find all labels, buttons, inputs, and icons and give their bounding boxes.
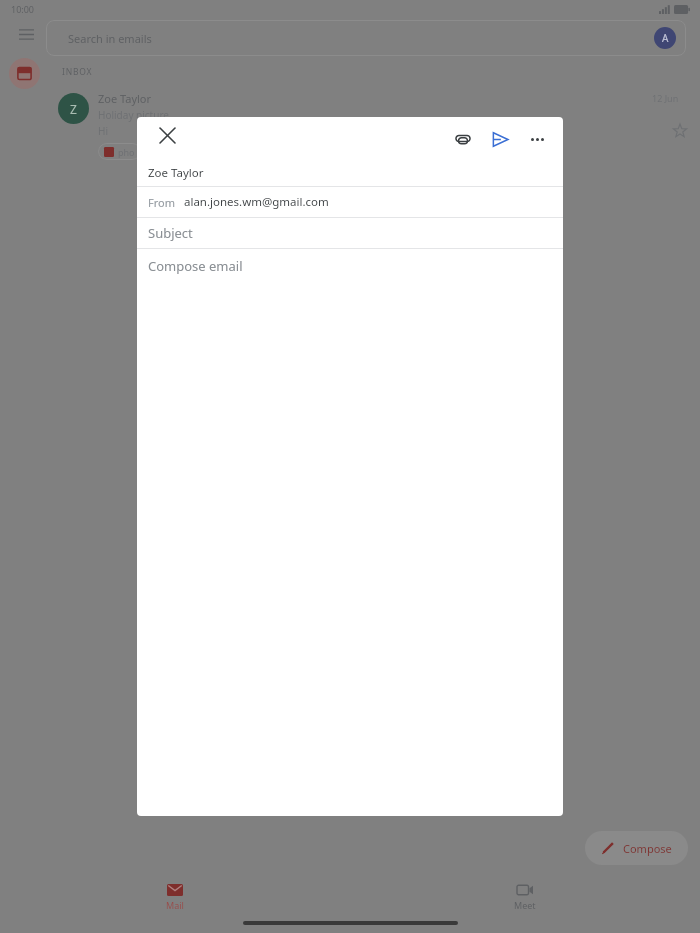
button[interactable]: Meet	[510, 880, 540, 915]
staticText: Meet	[514, 899, 536, 911]
staticText: Zoe Taylor	[148, 165, 204, 181]
button[interactable]: Send	[482, 121, 518, 157]
staticText: A	[662, 31, 669, 45]
staticText: Hi	[98, 124, 108, 138]
button[interactable]: Attach file	[445, 121, 481, 157]
button[interactable]: More options	[519, 121, 555, 157]
staticText: INBOX	[62, 66, 93, 78]
staticText: 12 Jun	[652, 92, 679, 104]
staticText: 10:00	[11, 3, 35, 15]
button[interactable]: Zoe Taylor	[137, 160, 563, 186]
button[interactable]: Star	[670, 121, 690, 141]
staticText: Subject	[148, 224, 193, 242]
button[interactable]: Search in emails	[46, 20, 686, 56]
staticText: Zoe Taylor	[98, 91, 152, 106]
button[interactable]: Inbox	[9, 58, 40, 89]
button[interactable]: Z	[0, 88, 700, 168]
button[interactable]: Mail	[162, 880, 188, 915]
staticText: From	[148, 195, 175, 210]
button[interactable]: Account	[654, 27, 676, 49]
staticText: Search in emails	[68, 31, 152, 46]
button[interactable]: Close	[149, 117, 185, 153]
button[interactable]: From	[137, 187, 563, 217]
button[interactable]: Compose email	[137, 249, 563, 816]
staticText: Holiday picture	[98, 108, 169, 122]
button[interactable]: Subject	[137, 218, 563, 248]
button[interactable]: pho	[104, 143, 135, 160]
staticText: Compose email	[148, 257, 243, 275]
staticText: alan.jones.wm@gmail.com	[184, 194, 329, 210]
staticText: pho	[118, 146, 135, 158]
staticText: Mail	[166, 899, 184, 911]
button[interactable]: Navigation menu	[10, 18, 42, 50]
staticText: Z	[70, 101, 77, 117]
button[interactable]: Compose	[601, 831, 672, 865]
staticText: Compose	[623, 841, 672, 856]
